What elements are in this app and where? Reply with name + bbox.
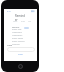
staticText: Reminder bbox=[15, 14, 26, 22]
other: Home bbox=[18, 64, 23, 69]
button[interactable]: Repeat option bbox=[24, 27, 29, 29]
button[interactable]: Mon bbox=[13, 20, 18, 23]
staticText: Custom bbox=[12, 43, 20, 46]
staticText: Repeat bbox=[12, 26, 20, 29]
button[interactable]: Weekdays bbox=[4, 30, 37, 33]
button[interactable]: AM bbox=[28, 20, 32, 23]
staticText: Every week bbox=[12, 37, 24, 40]
staticText: Every month bbox=[12, 40, 25, 43]
button[interactable] bbox=[7, 47, 35, 52]
staticText: Note bbox=[7, 44, 13, 47]
button[interactable]: 9:00 bbox=[21, 20, 25, 23]
button[interactable]: Weekends bbox=[4, 33, 37, 36]
staticText: AM bbox=[28, 20, 32, 23]
button[interactable]: Every day bbox=[4, 27, 37, 30]
button[interactable]: Every week bbox=[4, 36, 37, 39]
staticText: 9:00 bbox=[21, 20, 25, 23]
button[interactable]: Save bbox=[18, 53, 23, 56]
staticText: Weekends bbox=[12, 34, 23, 37]
staticText: Every day bbox=[12, 28, 22, 31]
button[interactable]: Custom bbox=[4, 42, 37, 45]
staticText: Mon bbox=[13, 20, 18, 23]
button[interactable]: Every month bbox=[4, 39, 37, 42]
staticText: Weekdays bbox=[12, 31, 22, 34]
staticText: 9:41 bbox=[7, 10, 11, 12]
staticText: ▮▮▮ bbox=[31, 10, 35, 12]
